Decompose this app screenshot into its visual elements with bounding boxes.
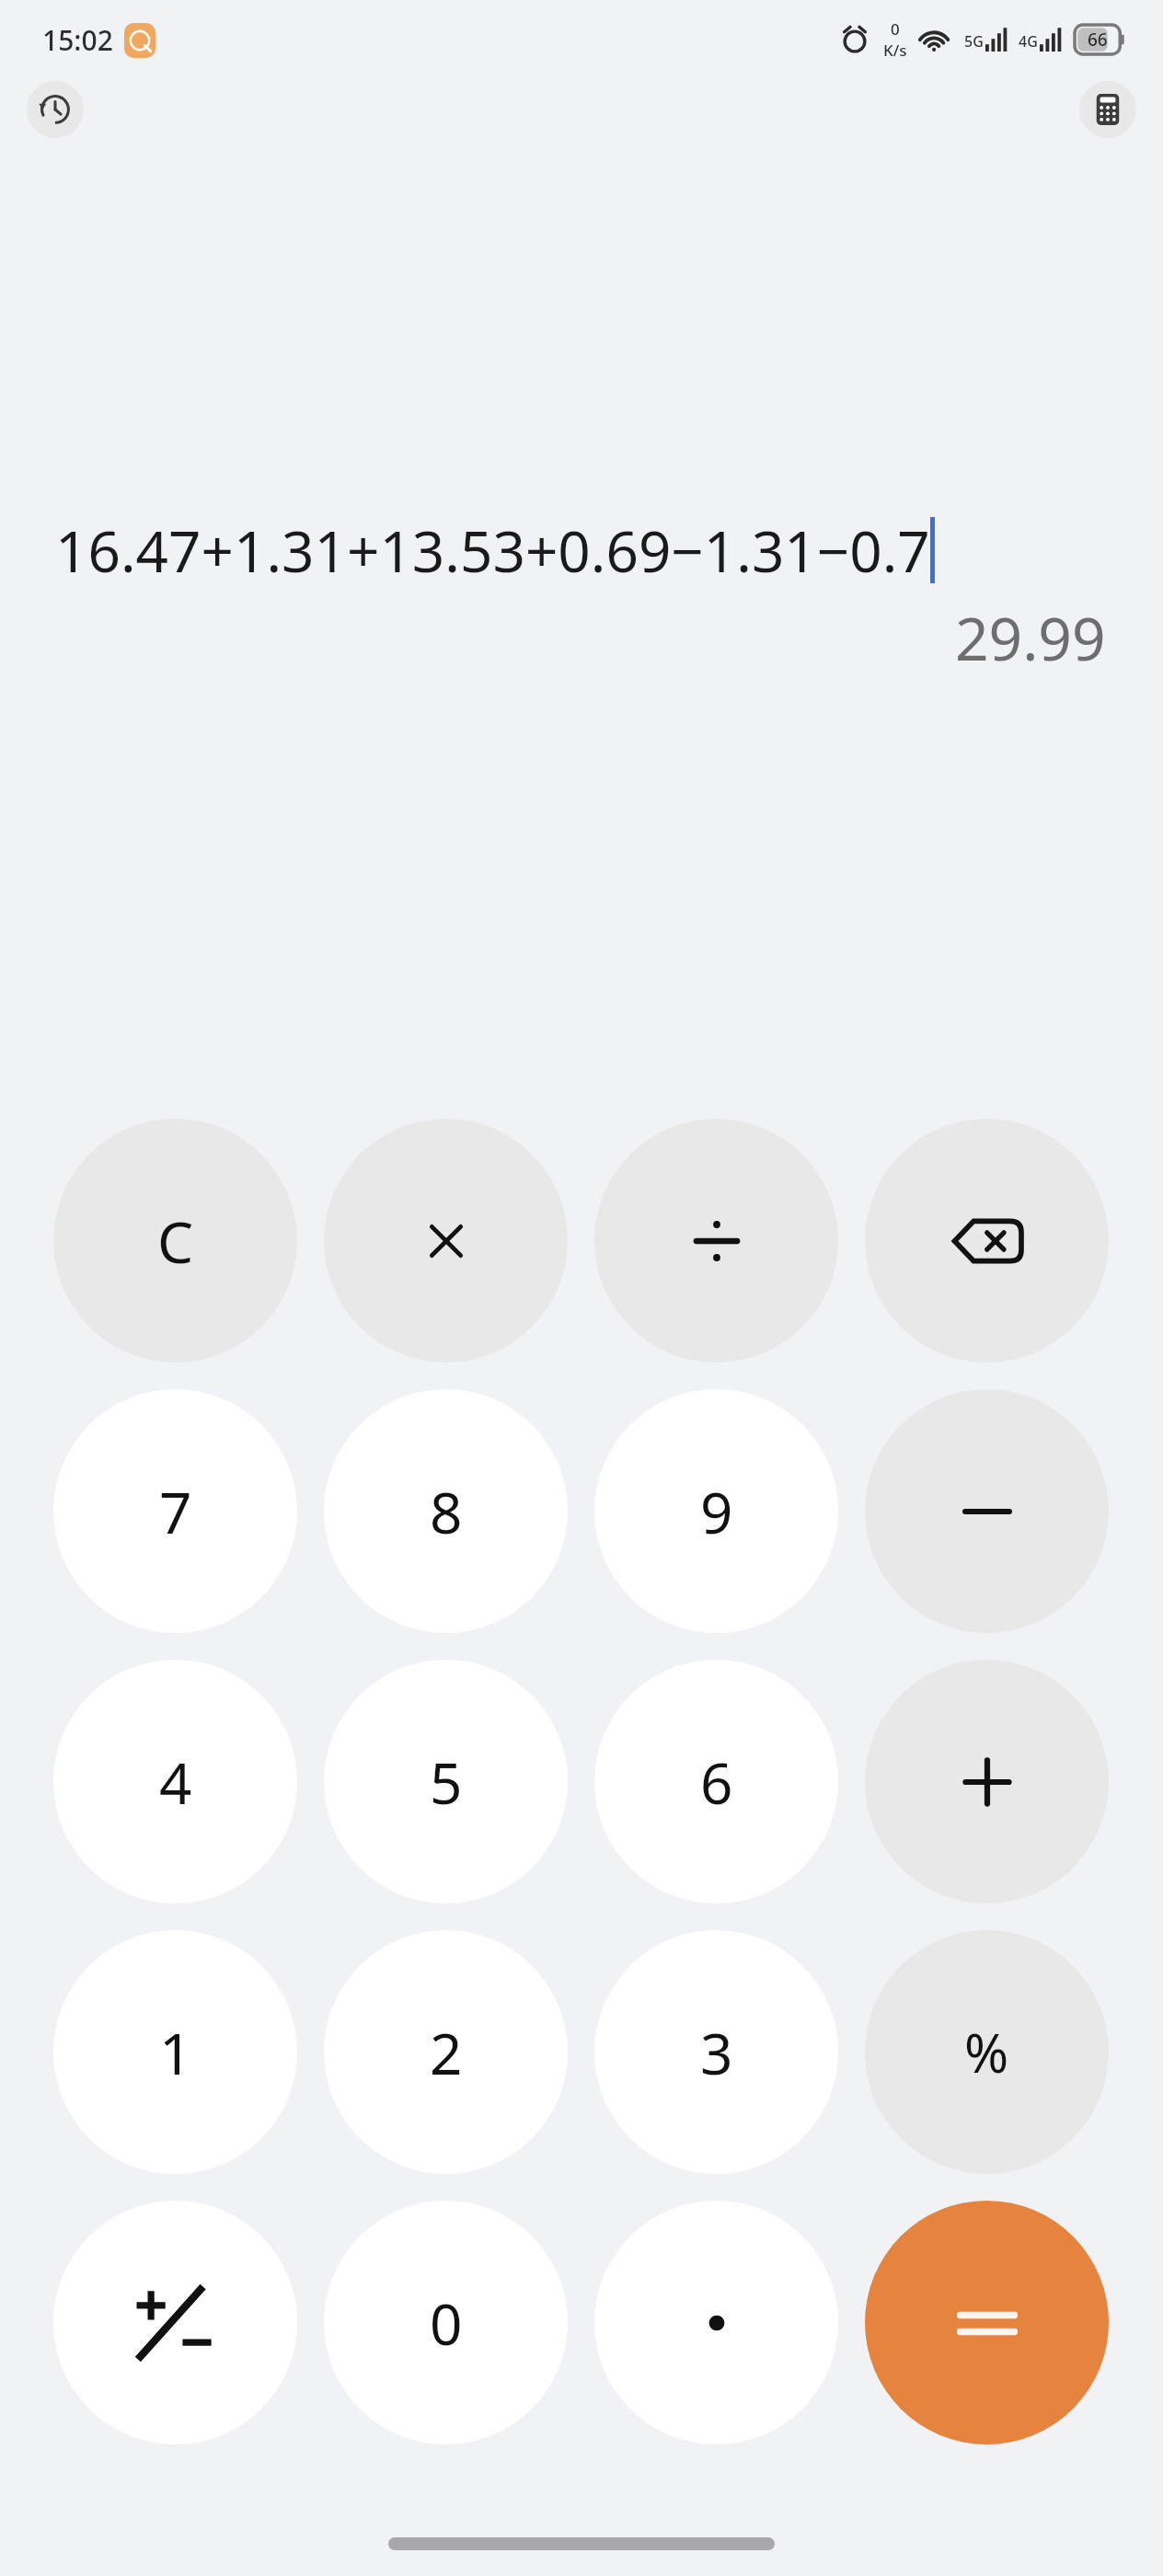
staticText: 5: [430, 1743, 463, 1821]
button[interactable]: [324, 1119, 568, 1363]
button[interactable]: 9: [594, 1389, 838, 1633]
staticText: 8: [430, 1473, 463, 1550]
button[interactable]: Backspace: [865, 1119, 1109, 1363]
button[interactable]: C: [53, 1119, 297, 1363]
button[interactable]: 5: [324, 1660, 568, 1903]
button[interactable]: [594, 1119, 838, 1363]
staticText: 4G: [1019, 31, 1038, 52]
button[interactable]: 2: [324, 1930, 568, 2174]
staticText: 66: [1088, 28, 1108, 52]
button[interactable]: 6: [594, 1660, 838, 1903]
staticText: 0: [891, 18, 900, 40]
button[interactable]: %: [865, 1930, 1109, 2174]
button[interactable]: Calculator mode: [1079, 81, 1136, 138]
button[interactable]: Equals: [865, 2201, 1109, 2444]
staticText: 3: [700, 2014, 733, 2091]
button[interactable]: Plus minus: [53, 2201, 297, 2444]
staticText: 16.47+1.31+13.53+0.69−1.31−0.7: [55, 512, 930, 589]
button[interactable]: 8: [324, 1389, 568, 1633]
button[interactable]: [865, 1389, 1109, 1633]
staticText: 29.99: [955, 598, 1106, 678]
button[interactable]: 0: [324, 2201, 568, 2444]
button[interactable]: History: [27, 81, 84, 138]
button[interactable]: 3: [594, 1930, 838, 2174]
staticText: K/s: [883, 40, 907, 61]
staticText: 9: [700, 1473, 733, 1550]
button[interactable]: 7: [53, 1389, 297, 1633]
staticText: C: [157, 1202, 194, 1280]
staticText: 5G: [964, 31, 984, 52]
staticText: 2: [430, 2014, 463, 2091]
button[interactable]: 4: [53, 1660, 297, 1903]
staticText: 4: [159, 1743, 192, 1821]
staticText: %: [964, 2016, 1009, 2088]
button[interactable]: Decimal point: [594, 2201, 838, 2444]
staticText: 6: [700, 1743, 733, 1821]
button[interactable]: [865, 1660, 1109, 1903]
staticText: 15:02: [42, 21, 113, 59]
staticText: 1: [159, 2014, 192, 2091]
staticText: 0: [430, 2284, 463, 2362]
staticText: 7: [159, 1473, 192, 1550]
button[interactable]: 1: [53, 1930, 297, 2174]
